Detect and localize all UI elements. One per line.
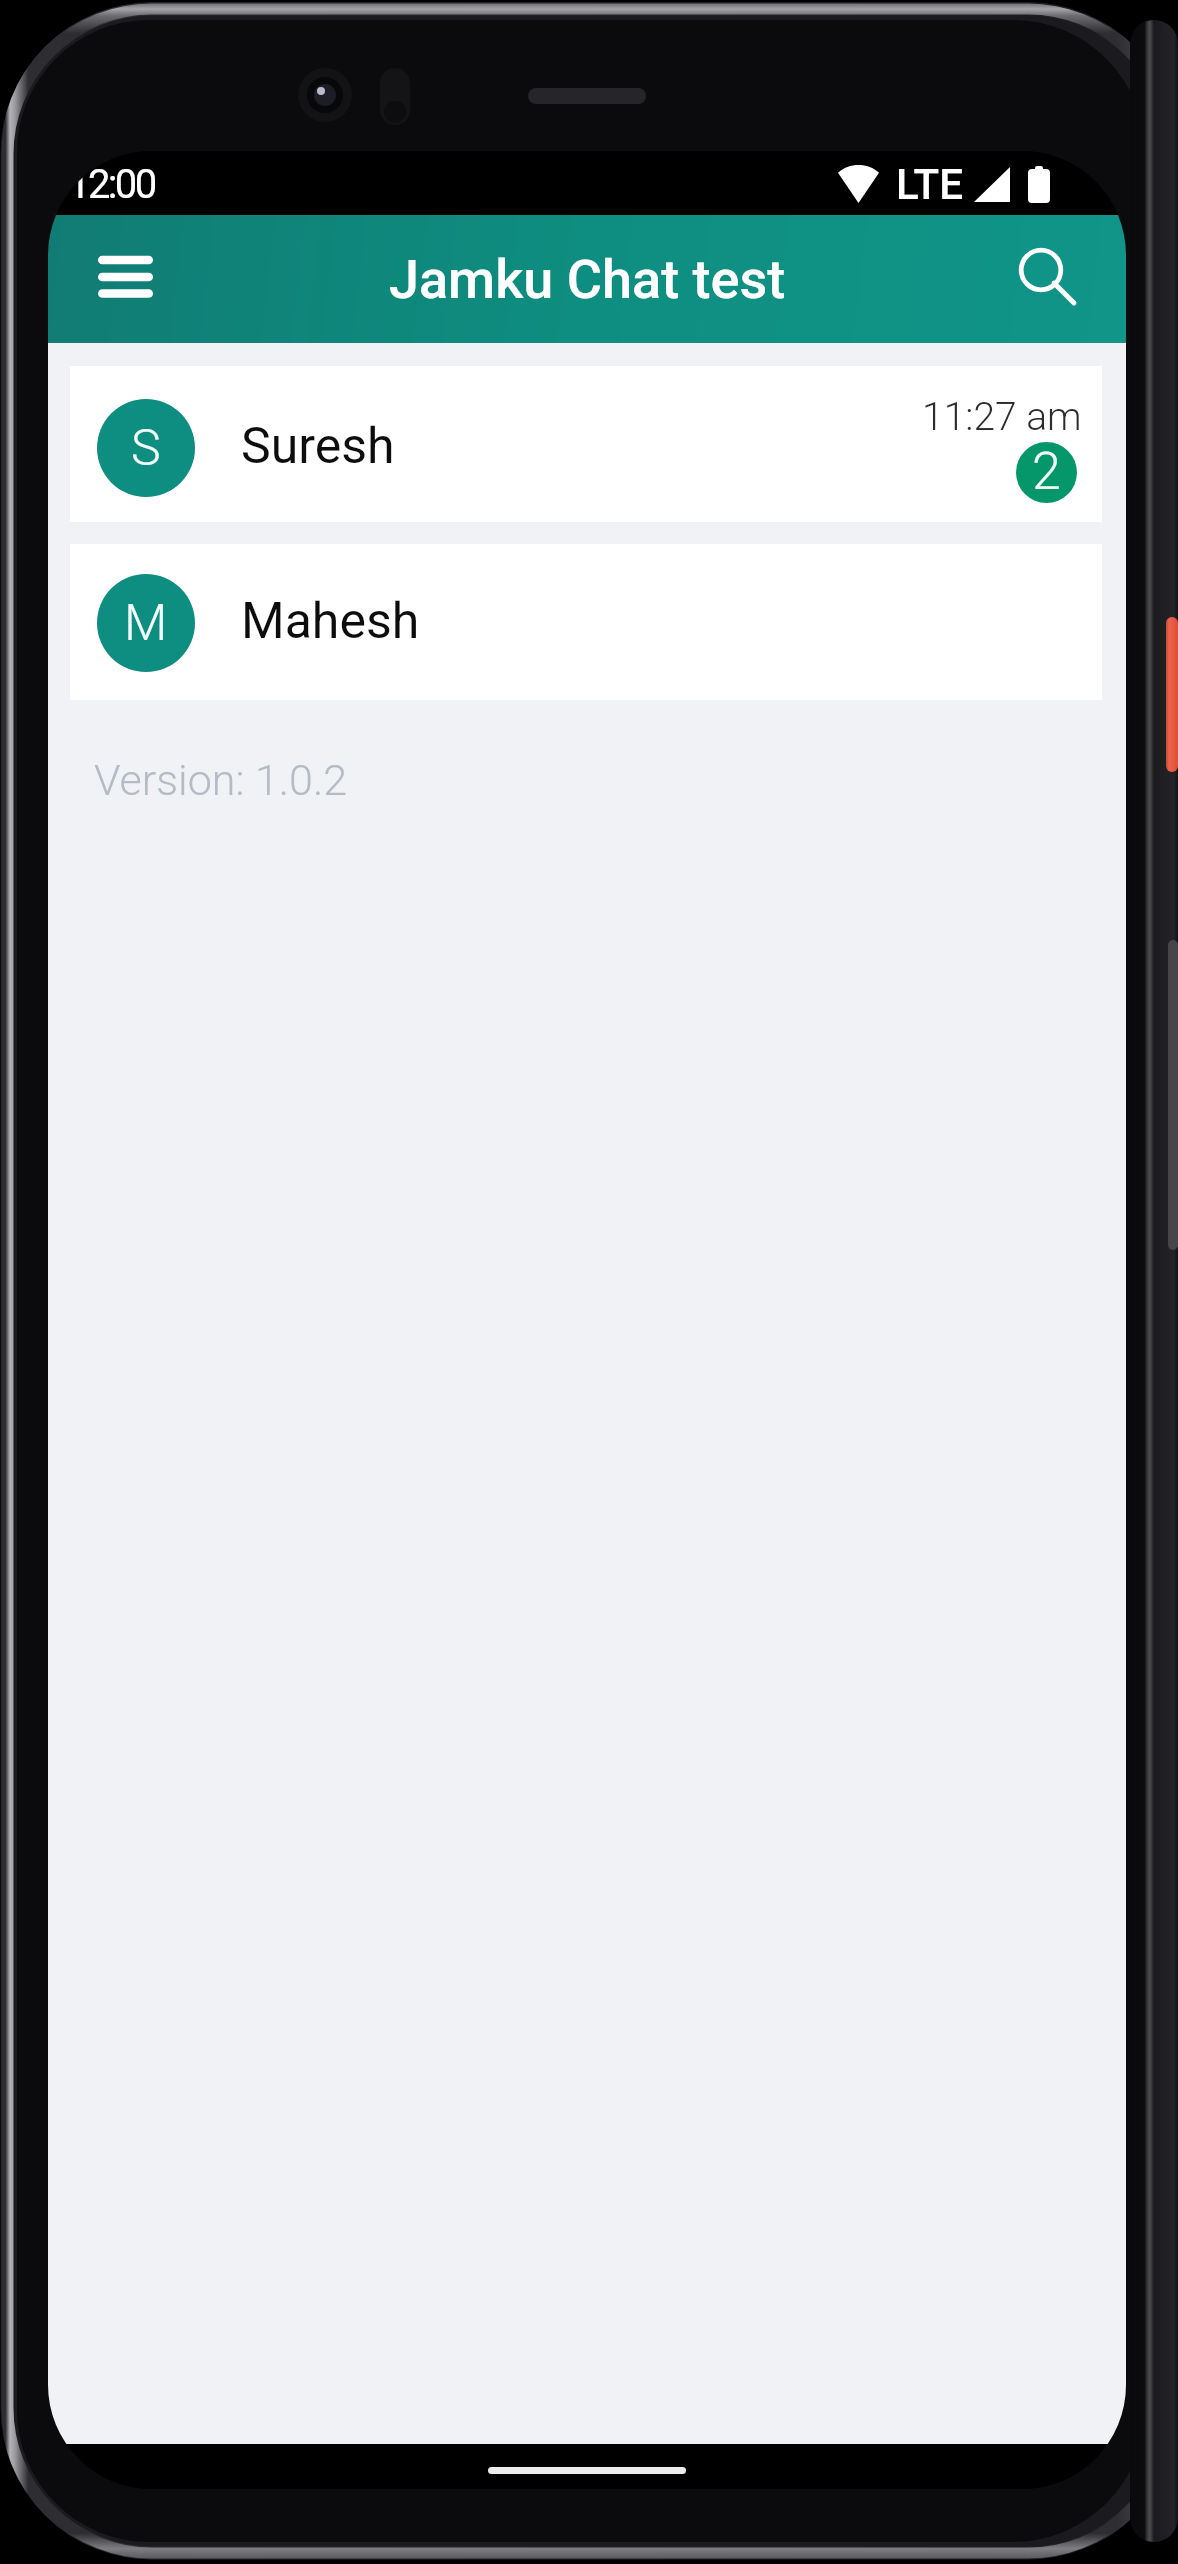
staticText: S [131, 419, 161, 478]
button[interactable]: Search [998, 215, 1126, 343]
staticText: 11:27 am [922, 394, 1082, 440]
staticText: 2 [1032, 442, 1061, 502]
staticText: 12:00 [68, 161, 155, 208]
button[interactable]: M [70, 544, 1102, 700]
staticText: Mahesh [241, 592, 420, 651]
staticText: Version: 1.0.2 [94, 755, 348, 805]
staticText: LTE [896, 160, 963, 209]
staticText: M [124, 594, 168, 653]
button[interactable]: Open navigation menu [49, 215, 201, 343]
button[interactable]: S [70, 366, 1102, 522]
button[interactable]: Home [488, 2467, 686, 2474]
button[interactable]: 2 unread messages [1016, 442, 1077, 503]
staticText: Jamku Chat test [389, 248, 786, 311]
staticText: Suresh [241, 417, 395, 476]
